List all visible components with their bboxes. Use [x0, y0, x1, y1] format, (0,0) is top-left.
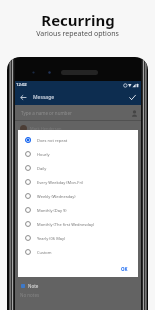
button[interactable]: Monthly (Day 9)	[18, 203, 138, 217]
button[interactable]: Back	[17, 91, 29, 103]
button[interactable]: Save	[126, 91, 138, 103]
staticText: Custom	[37, 250, 52, 255]
button[interactable]: Custom	[18, 245, 138, 259]
button[interactable]: Weekly (Wednesday)	[18, 189, 138, 203]
button[interactable]: OK	[118, 265, 131, 273]
staticText: Message	[33, 94, 55, 101]
staticText: Monthly (Day 9)	[37, 208, 67, 213]
button[interactable]: Yearly (06 May)	[18, 231, 138, 245]
staticText: Note	[28, 283, 39, 289]
staticText: Every Weekday (Mon-Fri)	[37, 180, 84, 185]
button[interactable]: Every Weekday (Mon-Fri)	[18, 175, 138, 189]
staticText: Yearly (06 May)	[37, 236, 66, 241]
staticText: Hourly	[37, 152, 50, 157]
staticText: 12:02	[16, 82, 27, 88]
button[interactable]: Daily	[18, 161, 138, 175]
button[interactable]: Monthly (The first Wednesday)	[18, 217, 138, 231]
button[interactable]: Hourly	[18, 147, 138, 161]
staticText: Weekly (Wednesday)	[37, 194, 76, 199]
staticText: No notes	[20, 292, 40, 298]
staticText: Mark Henderson	[30, 126, 62, 131]
staticText: Daily	[37, 166, 47, 171]
staticText: Monthly (The first Wednesday)	[37, 222, 95, 227]
button[interactable]: Does not repeat	[18, 133, 138, 147]
staticText: OK	[121, 266, 128, 272]
staticText: Recurring	[41, 10, 115, 30]
staticText: Does not repeat	[37, 138, 68, 143]
staticText: Various repeated options	[36, 29, 119, 39]
staticText: Type a name or number	[21, 110, 72, 116]
